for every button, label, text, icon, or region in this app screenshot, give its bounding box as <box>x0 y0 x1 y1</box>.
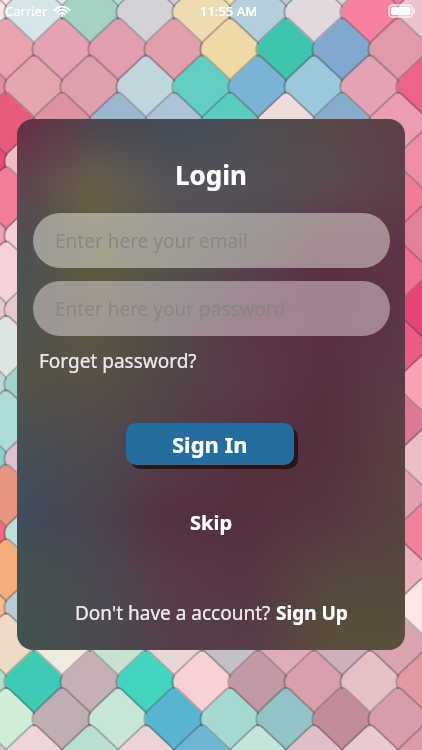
staticText: Forget password? <box>39 348 197 374</box>
staticText: Sign In <box>172 429 248 459</box>
button[interactable]: Forget password? <box>37 346 199 376</box>
staticText: 11:55 AM <box>200 2 258 20</box>
staticText: Enter here your email <box>55 228 248 254</box>
button[interactable]: Sign Up <box>276 600 348 626</box>
staticText: Login <box>175 157 247 192</box>
staticText: Skip <box>190 509 233 536</box>
staticText: Don't have a account? <box>75 600 276 626</box>
staticText: Sign Up <box>276 600 348 626</box>
button[interactable]: Skip <box>182 505 241 540</box>
button[interactable]: Sign In <box>126 423 294 465</box>
staticText: Carrier <box>5 2 48 20</box>
button[interactable]: Enter here your password <box>33 281 390 336</box>
staticText: Enter here your password <box>55 296 286 322</box>
button[interactable]: Enter here your email <box>33 213 390 268</box>
